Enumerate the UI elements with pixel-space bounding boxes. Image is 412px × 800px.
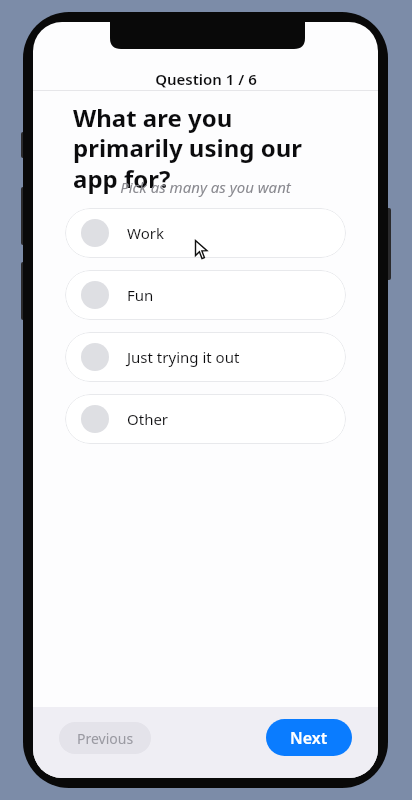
button[interactable]: Next — [266, 719, 352, 756]
button[interactable]: Fun — [65, 270, 346, 320]
staticText: Pick as many as you want — [120, 177, 291, 197]
staticText: Work — [127, 223, 164, 243]
staticText: Just trying it out — [127, 347, 240, 367]
button[interactable]: Previous — [59, 722, 151, 754]
button[interactable]: Other — [65, 394, 346, 444]
staticText: Fun — [127, 285, 154, 305]
staticText: Next — [290, 727, 328, 749]
button[interactable]: Just trying it out — [65, 332, 346, 382]
button[interactable]: Work — [65, 208, 346, 258]
staticText: What are you primarily using our app for… — [73, 101, 341, 195]
staticText: Previous — [77, 729, 134, 748]
staticText: Question 1 / 6 — [155, 69, 257, 89]
staticText: Other — [127, 409, 169, 429]
